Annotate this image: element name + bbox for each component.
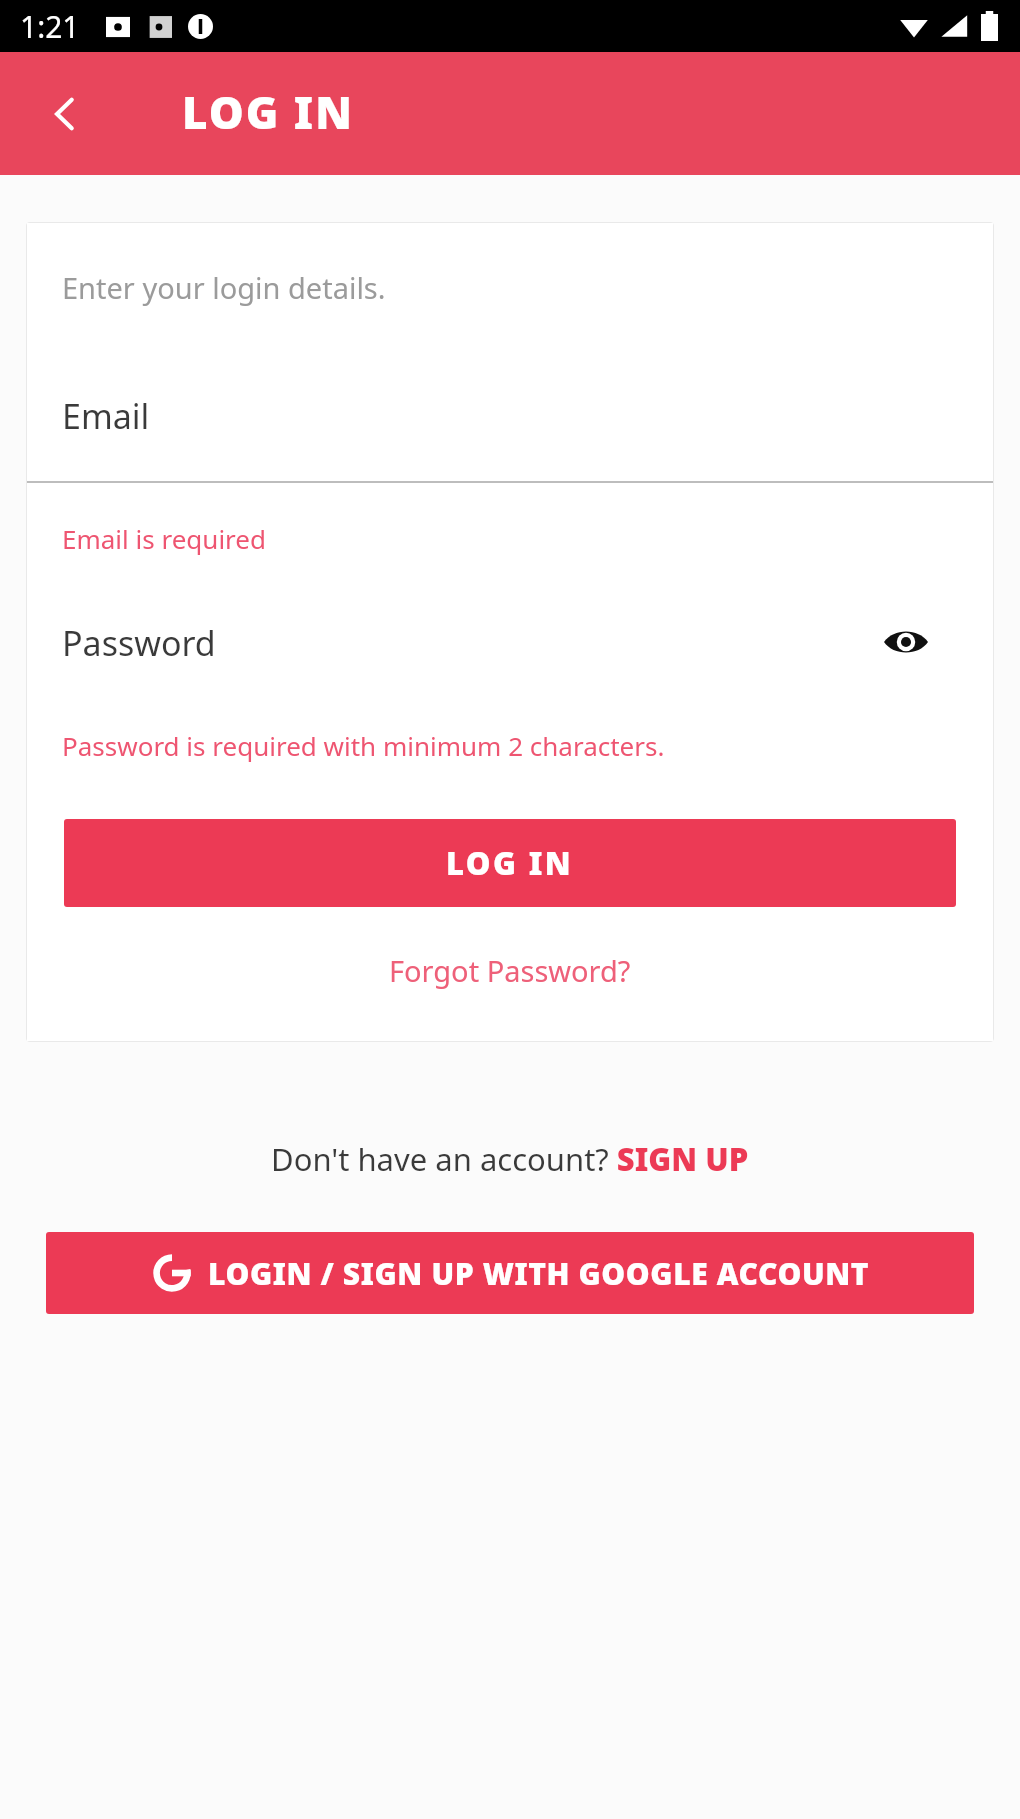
staticText: Password [62,620,216,666]
staticText: Email is required [62,521,266,556]
staticText: LOGIN / SIGN UP WITH GOOGLE ACCOUNT [208,1253,870,1294]
staticText: LOG IN [182,82,354,142]
button[interactable]: Forgot Password? [26,951,994,990]
staticText: Enter your login details. [62,268,386,307]
button[interactable]: Password [26,606,994,680]
button[interactable]: Don't have an account? SIGN UP [0,1138,1020,1180]
staticText: Password is required with minimum 2 char… [62,728,665,763]
staticText: Email [62,393,150,439]
staticText: 1:21 [20,6,80,47]
staticText: Don't have an account? SIGN UP [271,1138,749,1180]
button[interactable]: LOGIN / SIGN UP WITH GOOGLE ACCOUNT [46,1232,974,1314]
button[interactable]: Show password [870,606,942,678]
staticText: LOG IN [446,842,574,884]
button[interactable]: Back [18,67,112,161]
button[interactable]: LOG IN [64,819,956,907]
button[interactable]: Email [26,385,994,447]
staticText: Forgot Password? [389,951,631,990]
